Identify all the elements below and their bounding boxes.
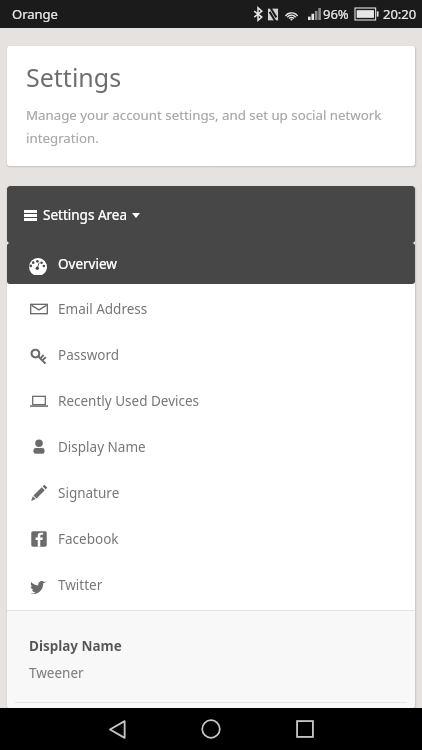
staticText: Display Name (29, 637, 122, 655)
button[interactable]: Display Name (7, 424, 415, 470)
staticText: Recently Used Devices (58, 392, 200, 410)
staticText: 96% (323, 5, 349, 23)
staticText: Tweener (29, 664, 84, 682)
button[interactable]: Recents (281, 708, 329, 750)
button[interactable]: Email Address (7, 286, 415, 332)
button[interactable]: Facebook (7, 516, 415, 562)
button[interactable]: Password (7, 332, 415, 378)
button[interactable]: Settings Area (7, 186, 415, 243)
staticText: Facebook (58, 530, 119, 548)
staticText: Email Address (58, 300, 148, 318)
button[interactable]: Home (187, 708, 235, 750)
staticText: Twitter (58, 576, 103, 594)
staticText: Overview (58, 255, 117, 273)
staticText: Display Name (58, 438, 146, 456)
staticText: Password (58, 346, 120, 364)
staticText: 20:20 (383, 5, 417, 23)
staticText: Orange (12, 5, 58, 23)
button[interactable]: Recently Used Devices (7, 378, 415, 424)
button[interactable]: Twitter (7, 562, 415, 608)
staticText: Manage your account settings, and set up… (26, 106, 401, 147)
button[interactable]: Back (93, 708, 141, 750)
staticText: Settings Area (43, 206, 127, 224)
staticText: Signature (58, 484, 120, 502)
button[interactable]: Signature (7, 470, 415, 516)
staticText: Settings (26, 60, 122, 94)
button[interactable]: Overview (7, 243, 415, 284)
